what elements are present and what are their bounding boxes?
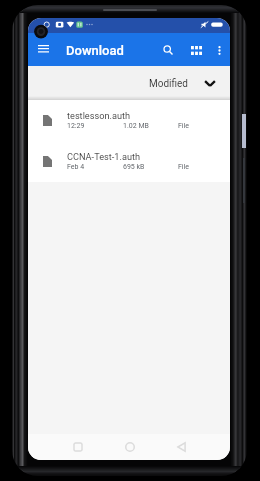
staticText: testlesson.auth (67, 110, 131, 121)
button[interactable]: Home (119, 436, 141, 458)
button[interactable]: Back (170, 436, 192, 458)
staticText: 695 kB (123, 163, 178, 171)
button[interactable]: Recent apps (67, 436, 89, 458)
button[interactable]: More options (208, 39, 230, 61)
button[interactable]: Modified (141, 68, 230, 99)
button[interactable]: testlesson.auth (28, 100, 230, 141)
staticText: 1.02 MB (123, 122, 178, 130)
button[interactable]: Switch to grid view (184, 38, 208, 62)
staticText: File (178, 163, 189, 171)
staticText: Feb 4 (67, 163, 123, 171)
staticText: File (178, 122, 189, 130)
button[interactable]: Search (156, 38, 180, 62)
button[interactable]: Open navigation menu (31, 37, 55, 61)
button[interactable]: CCNA-Test-1.auth (28, 141, 230, 182)
staticText: Download (66, 43, 124, 58)
staticText: Modified (149, 78, 188, 90)
staticText: CCNA-Test-1.auth (67, 151, 141, 162)
staticText: 12:29 (67, 122, 123, 130)
